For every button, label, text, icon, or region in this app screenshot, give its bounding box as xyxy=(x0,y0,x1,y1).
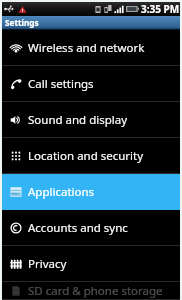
button[interactable]: Applications xyxy=(2,174,180,210)
staticText: Settings xyxy=(5,17,39,28)
button[interactable]: Location and security xyxy=(2,138,180,174)
staticText: Wireless and network xyxy=(28,40,145,56)
staticText: Applications xyxy=(28,184,95,200)
staticText: SD card & phone storage xyxy=(28,283,163,299)
staticText: Privacy xyxy=(28,256,67,272)
staticText: 3:35 PM xyxy=(141,2,180,16)
button[interactable]: SD card & phone storage xyxy=(2,282,180,300)
button[interactable]: Wireless and network xyxy=(2,30,180,66)
button[interactable]: Call settings xyxy=(2,66,180,102)
staticText: Accounts and sync xyxy=(28,220,128,236)
staticText: Call settings xyxy=(28,76,94,92)
button[interactable]: Accounts and sync xyxy=(2,210,180,246)
button[interactable]: Sound and display xyxy=(2,102,180,138)
button[interactable]: Privacy xyxy=(2,246,180,282)
staticText: Location and security xyxy=(28,148,144,164)
staticText: Sound and display xyxy=(28,112,128,128)
